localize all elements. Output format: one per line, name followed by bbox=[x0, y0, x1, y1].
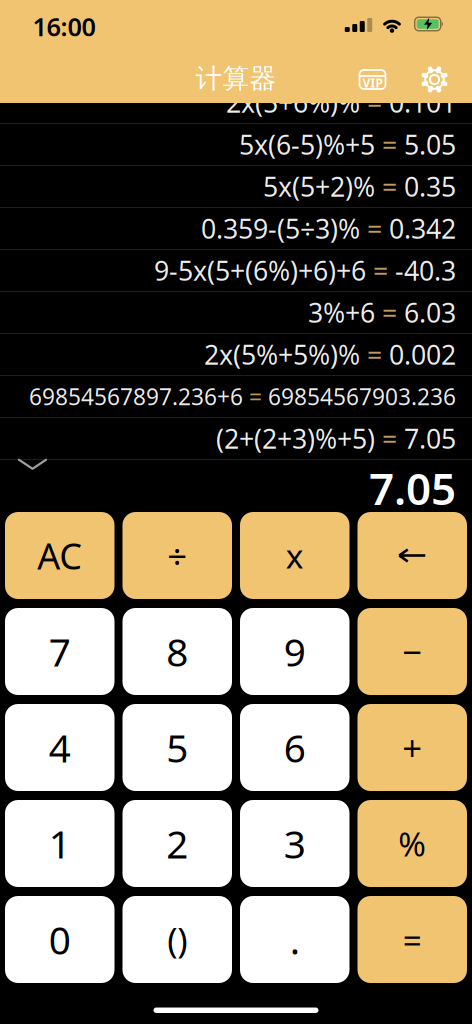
staticText: 3%+6 bbox=[308, 295, 375, 330]
staticText: ÷ bbox=[167, 532, 187, 578]
button[interactable]: 5x(6-5)%+5 bbox=[0, 124, 472, 166]
staticText: 0.359-(5÷3)% bbox=[201, 211, 360, 246]
button[interactable]: 3%+6 bbox=[0, 292, 472, 334]
staticText: 计算器 bbox=[195, 62, 276, 95]
staticText: 1 bbox=[49, 818, 71, 869]
button[interactable]: 3 bbox=[240, 800, 349, 887]
staticText: = bbox=[375, 127, 404, 162]
staticText: 69854567903.236 bbox=[268, 381, 456, 411]
staticText: 9-5x(5+(6%)+6)+6 bbox=[154, 253, 366, 288]
button[interactable]: 9 bbox=[240, 608, 349, 695]
button[interactable]: . bbox=[240, 896, 349, 983]
staticText: 2x(5%+5%)% bbox=[204, 337, 360, 372]
staticText: x bbox=[286, 533, 304, 578]
button[interactable]: AC bbox=[5, 512, 114, 599]
staticText: (2+(2+3)%+5) bbox=[216, 421, 375, 456]
staticText: 8 bbox=[166, 626, 188, 677]
staticText: = bbox=[360, 85, 389, 120]
button[interactable]: (2+(2+3)%+5) bbox=[0, 418, 472, 460]
button[interactable]: 5 bbox=[122, 704, 232, 791]
button[interactable]: 8 bbox=[122, 608, 232, 695]
button[interactable]: Backspace bbox=[357, 512, 467, 599]
staticText: 0.35 bbox=[404, 169, 456, 204]
button[interactable]: Collapse history bbox=[0, 455, 47, 470]
button[interactable]: = bbox=[357, 896, 467, 983]
button[interactable]: 5x(5+2)% bbox=[0, 166, 472, 208]
staticText: 4 bbox=[49, 722, 71, 773]
staticText: AC bbox=[37, 532, 82, 579]
button[interactable]: % bbox=[357, 800, 467, 887]
button[interactable]: 2x(5%+5%)% bbox=[0, 334, 472, 376]
staticText: = bbox=[360, 211, 389, 246]
button[interactable]: 7 bbox=[5, 608, 114, 695]
staticText: 16:00 bbox=[32, 10, 95, 43]
staticText: 5x(5+2)% bbox=[263, 169, 375, 204]
staticText: 3 bbox=[284, 818, 306, 869]
button[interactable]: 6 bbox=[240, 704, 349, 791]
button[interactable]: 0 bbox=[5, 896, 114, 983]
button[interactable]: 2 bbox=[122, 800, 232, 887]
staticText: 69854567897.236+6 bbox=[29, 381, 243, 411]
staticText: = bbox=[403, 917, 422, 962]
staticText: % bbox=[398, 821, 426, 866]
staticText: 0.002 bbox=[389, 337, 456, 372]
staticText: . bbox=[290, 914, 300, 965]
button[interactable]: 69854567897.236+6 bbox=[0, 376, 472, 418]
button[interactable]: 2x(5+6%)% bbox=[0, 82, 472, 124]
staticText: 9 bbox=[284, 626, 306, 677]
staticText: 0 bbox=[49, 914, 71, 965]
button[interactable]: ÷ bbox=[122, 512, 232, 599]
staticText: 7 bbox=[49, 626, 71, 677]
button[interactable]: VIP bbox=[359, 70, 385, 89]
staticText: 5x(6-5)%+5 bbox=[239, 127, 375, 162]
staticText: 2x(5+6%)% bbox=[226, 85, 360, 120]
staticText: = bbox=[375, 169, 404, 204]
staticText: 5.05 bbox=[404, 127, 456, 162]
staticText: 7.05 bbox=[369, 459, 456, 517]
staticText: = bbox=[366, 253, 395, 288]
button[interactable]: 1 bbox=[5, 800, 114, 887]
staticText: = bbox=[375, 421, 404, 456]
button[interactable]: 9-5x(5+(6%)+6)+6 bbox=[0, 250, 472, 292]
staticText: 6.03 bbox=[404, 295, 456, 330]
button[interactable]: + bbox=[357, 704, 467, 791]
button[interactable]: x bbox=[240, 512, 349, 599]
staticText: = bbox=[243, 381, 268, 411]
staticText: () bbox=[167, 916, 187, 962]
staticText: 0.342 bbox=[389, 211, 456, 246]
button[interactable]: () bbox=[122, 896, 232, 983]
staticText: VIP bbox=[362, 75, 382, 91]
staticText: − bbox=[402, 628, 422, 674]
staticText: 0.101 bbox=[389, 85, 456, 120]
button[interactable]: Settings bbox=[420, 65, 448, 93]
staticText: = bbox=[360, 337, 389, 372]
button[interactable]: 4 bbox=[5, 704, 114, 791]
button[interactable]: 0.359-(5÷3)% bbox=[0, 208, 472, 250]
staticText: -40.3 bbox=[395, 253, 456, 288]
button[interactable]: − bbox=[357, 608, 467, 695]
staticText: + bbox=[402, 724, 422, 770]
staticText: 7.05 bbox=[404, 421, 456, 456]
staticText: = bbox=[375, 295, 404, 330]
staticText: 5 bbox=[166, 722, 188, 773]
staticText: 2 bbox=[166, 818, 188, 869]
staticText: 6 bbox=[284, 722, 306, 773]
